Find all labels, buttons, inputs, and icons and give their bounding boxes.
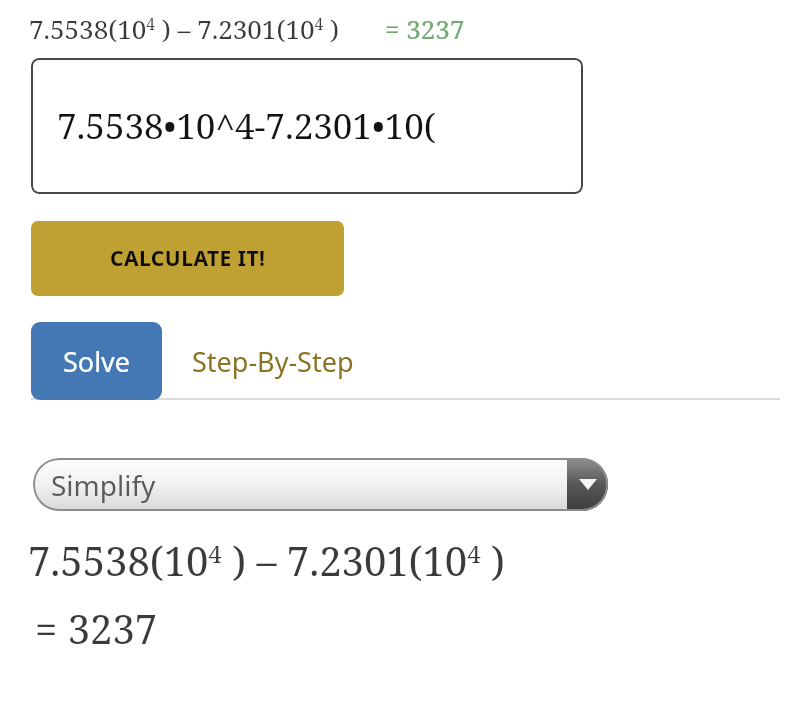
staticText: = 3237 (35, 601, 158, 655)
staticText: Step-By-Step (192, 343, 354, 380)
staticText: CALCULATE IT! (110, 244, 266, 273)
staticText: Simplify (51, 466, 156, 504)
button[interactable]: Solve (31, 322, 162, 400)
staticText: = 3237 (385, 11, 465, 46)
button[interactable]: Step-By-Step (162, 322, 384, 400)
button[interactable]: CALCULATE IT! (31, 221, 344, 296)
staticText: 7.5538•10^4-7.2301•10( (57, 102, 436, 150)
button[interactable]: Simplify (33, 458, 608, 511)
staticText: 7.5538(104 ) – 7.2301(104 ) (29, 11, 339, 46)
button[interactable]: 7.5538•10^4-7.2301•10( (31, 58, 583, 194)
button[interactable]: Open operation menu (567, 458, 608, 511)
staticText: 7.5538(104 ) – 7.2301(104 ) (28, 533, 505, 587)
staticText: Solve (63, 343, 131, 380)
